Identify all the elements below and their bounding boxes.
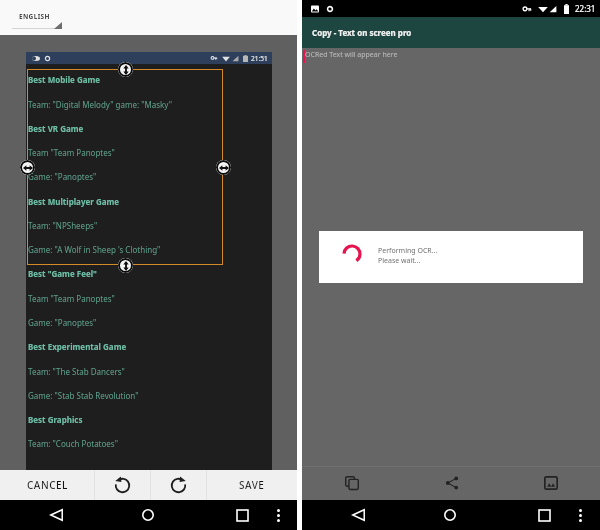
button[interactable]: Copy xyxy=(302,466,402,500)
staticText: Please wait... xyxy=(378,256,421,266)
staticText: Best Experimental Game xyxy=(28,341,127,352)
button[interactable]: Resize vertically xyxy=(118,258,133,273)
staticText: OCRed Text will appear here xyxy=(305,50,398,60)
staticText: SAVE xyxy=(239,478,265,492)
staticText: Performing OCR... xyxy=(378,246,438,256)
staticText: Team: "Digital Melody" game: "Masky" xyxy=(28,99,172,110)
button[interactable]: Back xyxy=(344,500,372,530)
staticText: Best Multiplayer Game xyxy=(28,196,120,207)
staticText: 22:31 xyxy=(575,3,596,14)
button[interactable]: Rotate right xyxy=(151,470,206,500)
staticText: 21:51 xyxy=(251,54,268,63)
button[interactable]: ENGLISH xyxy=(12,4,64,30)
staticText: Game: "Panoptes" xyxy=(28,317,97,328)
staticText: Copy - Text on screen pro xyxy=(312,27,412,38)
button[interactable]: Home xyxy=(134,500,162,530)
button[interactable]: More options xyxy=(568,500,592,530)
staticText: Game: "A Wolf in Sheep 's Clothing" xyxy=(28,244,161,255)
button[interactable]: CANCEL xyxy=(0,470,94,500)
staticText: ENGLISH xyxy=(19,12,50,21)
button[interactable]: Share xyxy=(402,466,501,500)
button[interactable]: Recents xyxy=(228,500,256,530)
staticText: Best Mobile Game xyxy=(28,74,101,85)
button[interactable]: Resize vertically xyxy=(118,62,133,77)
staticText: Game: "Panoptes" xyxy=(28,171,97,182)
staticText: Best Graphics xyxy=(28,414,83,425)
button[interactable]: Resize horizontally xyxy=(20,160,35,175)
button[interactable]: SAVE xyxy=(207,470,297,500)
staticText: Team: "Couch Potatoes" xyxy=(28,438,118,449)
button[interactable]: Resize horizontally xyxy=(216,160,231,175)
button[interactable]: Crop region xyxy=(27,69,223,265)
button[interactable]: Back xyxy=(42,500,70,530)
button[interactable]: Recents xyxy=(530,500,558,530)
staticText: Best VR Game xyxy=(28,123,84,134)
button[interactable]: Home xyxy=(436,500,464,530)
staticText: Best "Game Feel" xyxy=(28,268,97,279)
staticText: Team: "The Stab Dancers" xyxy=(28,366,125,377)
staticText: Game: "Stab Stab Revolution" xyxy=(28,390,139,401)
button[interactable]: Rotate left xyxy=(95,470,150,500)
staticText: Team "Team Panoptes" xyxy=(28,293,115,304)
staticText: CANCEL xyxy=(27,478,68,492)
button[interactable]: Image xyxy=(501,466,600,500)
staticText: Team: "NPSheeps" xyxy=(28,220,98,231)
staticText: Team "Team Panoptes" xyxy=(28,147,115,158)
button[interactable]: More options xyxy=(266,500,290,530)
